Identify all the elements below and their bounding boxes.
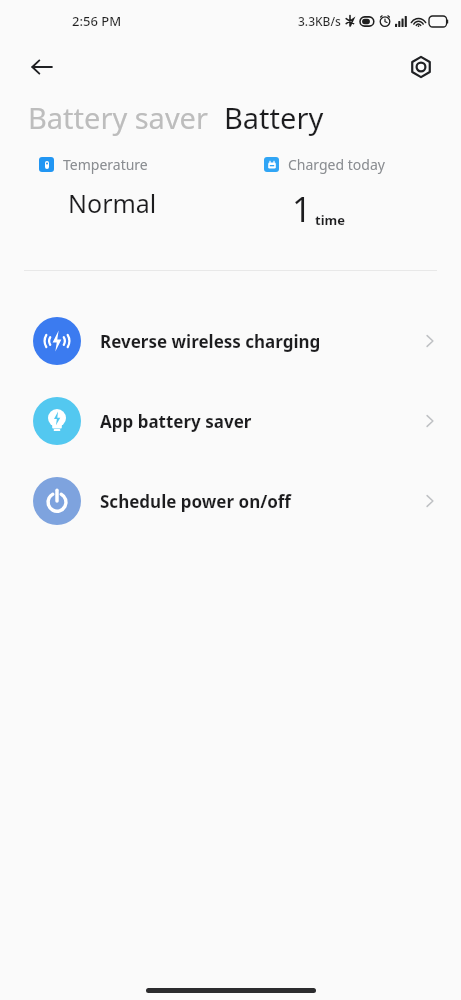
staticText: Reverse wireless charging [100, 330, 421, 353]
staticText: Charged today [288, 155, 385, 174]
staticText: 3.3KB/s [298, 13, 341, 29]
staticText: Schedule power on/off [100, 490, 421, 513]
button[interactable]: Battery saver [28, 98, 208, 137]
button[interactable]: Back [20, 45, 64, 89]
button[interactable]: Reverse wireless charging [0, 301, 461, 381]
button[interactable]: App battery saver [0, 381, 461, 461]
staticText: Normal [68, 186, 157, 220]
staticText: 1 [292, 186, 312, 232]
button[interactable]: Battery [224, 98, 324, 137]
staticText: 2:56 PM [72, 12, 122, 30]
staticText: Temperature [63, 155, 148, 174]
staticText: time [315, 211, 345, 229]
staticText: App battery saver [100, 410, 421, 433]
button[interactable]: Settings [399, 45, 443, 89]
button[interactable]: Schedule power on/off [0, 461, 461, 541]
